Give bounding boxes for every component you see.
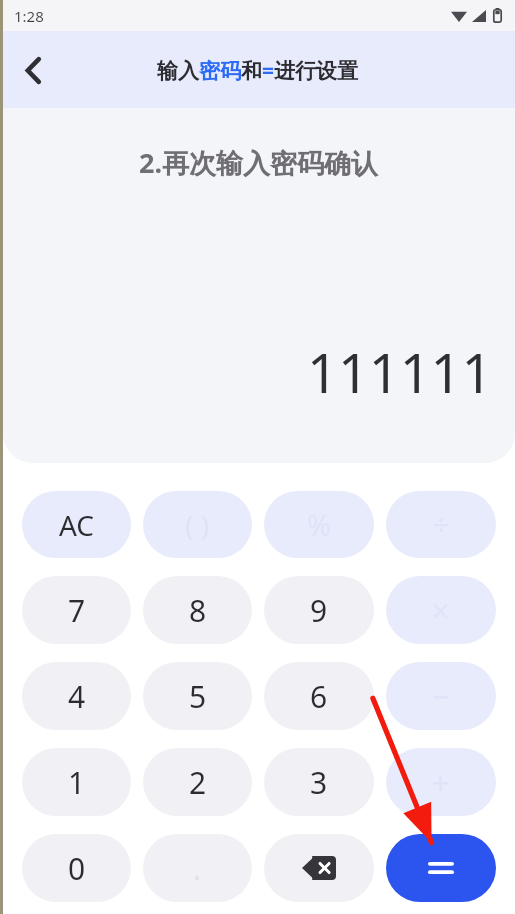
- button[interactable]: 5: [143, 662, 252, 730]
- button[interactable]: ×: [386, 576, 496, 644]
- staticText: 111111: [307, 335, 493, 409]
- button[interactable]: Equals: [386, 834, 496, 902]
- staticText: 5: [189, 676, 207, 717]
- button[interactable]: .: [143, 834, 252, 902]
- staticText: 8: [189, 590, 207, 631]
- staticText: 2: [189, 762, 207, 803]
- button[interactable]: 3: [264, 748, 374, 816]
- button[interactable]: ÷: [386, 491, 496, 558]
- staticText: 1: [68, 762, 86, 803]
- button[interactable]: 8: [143, 576, 252, 644]
- staticText: 9: [310, 590, 328, 631]
- button[interactable]: 1: [22, 748, 131, 816]
- button[interactable]: 4: [22, 662, 131, 730]
- button[interactable]: 9: [264, 576, 374, 644]
- button[interactable]: 7: [22, 576, 131, 644]
- staticText: 7: [68, 590, 86, 631]
- button[interactable]: %: [264, 491, 374, 558]
- button[interactable]: ( ): [143, 491, 252, 558]
- button[interactable]: 6: [264, 662, 374, 730]
- staticText: 6: [310, 676, 328, 717]
- staticText: AC: [59, 506, 95, 544]
- staticText: 3: [310, 762, 328, 803]
- button[interactable]: +: [386, 748, 496, 816]
- staticText: 1:28: [14, 6, 44, 26]
- button[interactable]: Backspace: [264, 834, 374, 902]
- button[interactable]: 0: [22, 834, 131, 902]
- staticText: %: [307, 505, 332, 544]
- button[interactable]: Back: [8, 45, 58, 95]
- staticText: 0: [68, 848, 86, 889]
- button[interactable]: −: [386, 662, 496, 730]
- staticText: 2.再次输入密码确认: [139, 144, 379, 181]
- staticText: 4: [68, 676, 86, 717]
- staticText: 输入密码和=进行设置: [0, 56, 515, 85]
- button[interactable]: 2: [143, 748, 252, 816]
- button[interactable]: AC: [22, 491, 131, 558]
